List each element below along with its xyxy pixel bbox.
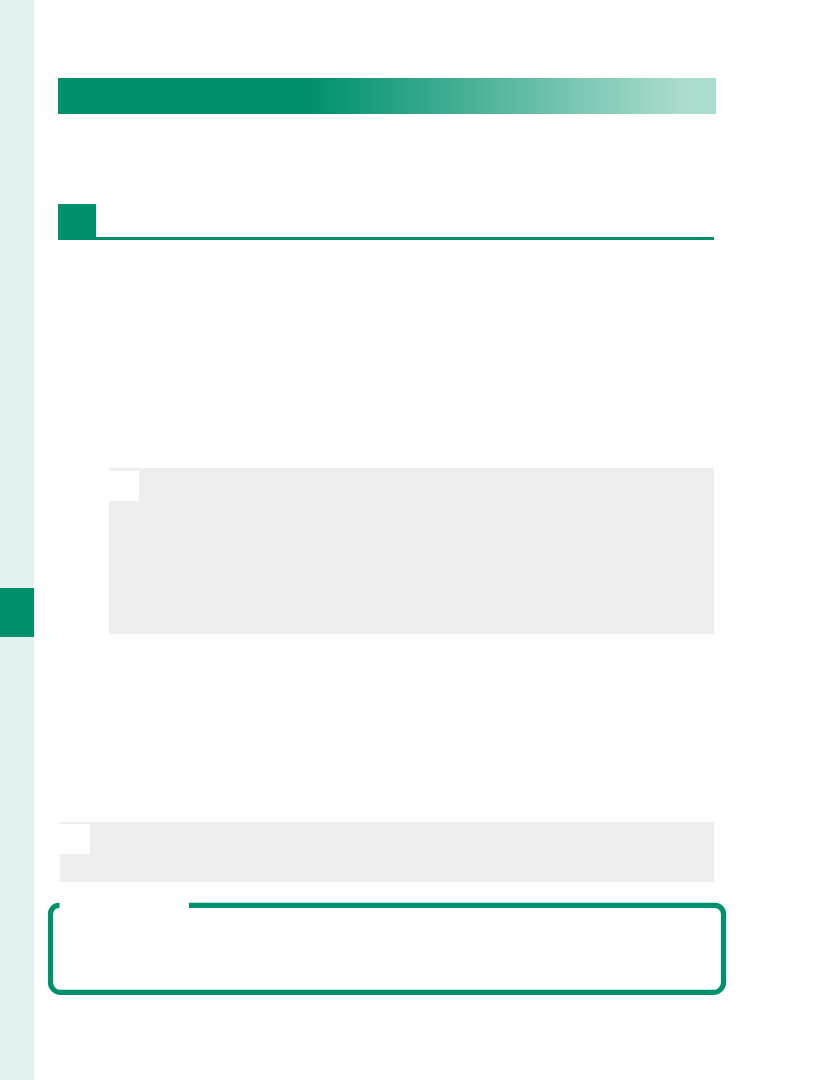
button[interactable]: Header [58,78,716,114]
button[interactable]: Text field [40,892,740,1008]
